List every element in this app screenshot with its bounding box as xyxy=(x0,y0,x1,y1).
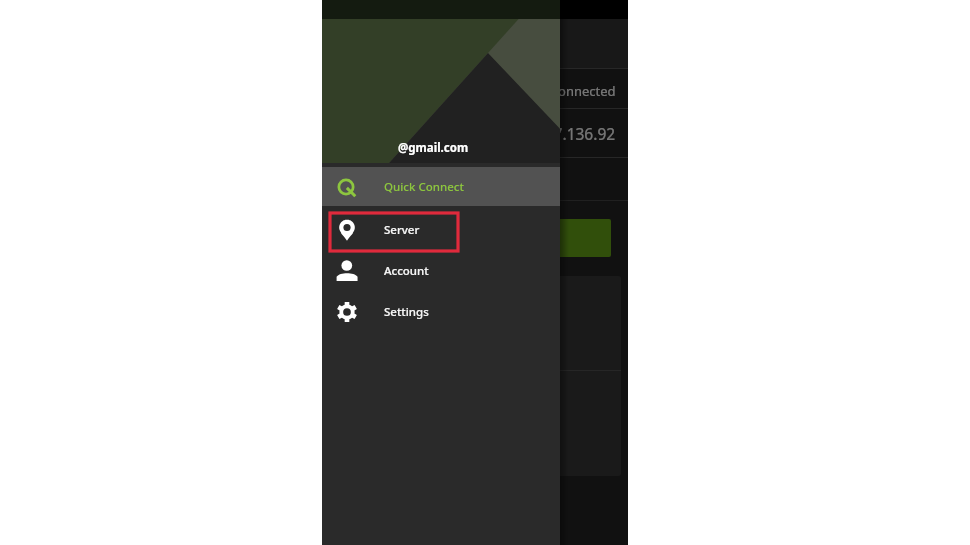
staticText: Not connected xyxy=(526,82,616,100)
other: Server xyxy=(336,219,358,241)
button[interactable]: Server xyxy=(322,209,560,250)
staticText: 41.197.136.92 xyxy=(514,123,616,144)
button[interactable]: Account xyxy=(322,250,560,291)
button[interactable]: Quick Connect xyxy=(322,167,560,206)
staticText: Quick Connect xyxy=(384,179,464,195)
other: Account xyxy=(336,260,358,282)
staticText: Server xyxy=(384,222,420,238)
button[interactable]: CONNECT xyxy=(339,219,611,257)
button[interactable]: Settings xyxy=(322,291,560,332)
staticText: Settings xyxy=(384,304,429,320)
staticText: @gmail.com xyxy=(398,140,469,156)
staticText: Account xyxy=(384,263,429,279)
staticText: CONNECT xyxy=(444,229,506,247)
other: Settings xyxy=(336,301,358,323)
